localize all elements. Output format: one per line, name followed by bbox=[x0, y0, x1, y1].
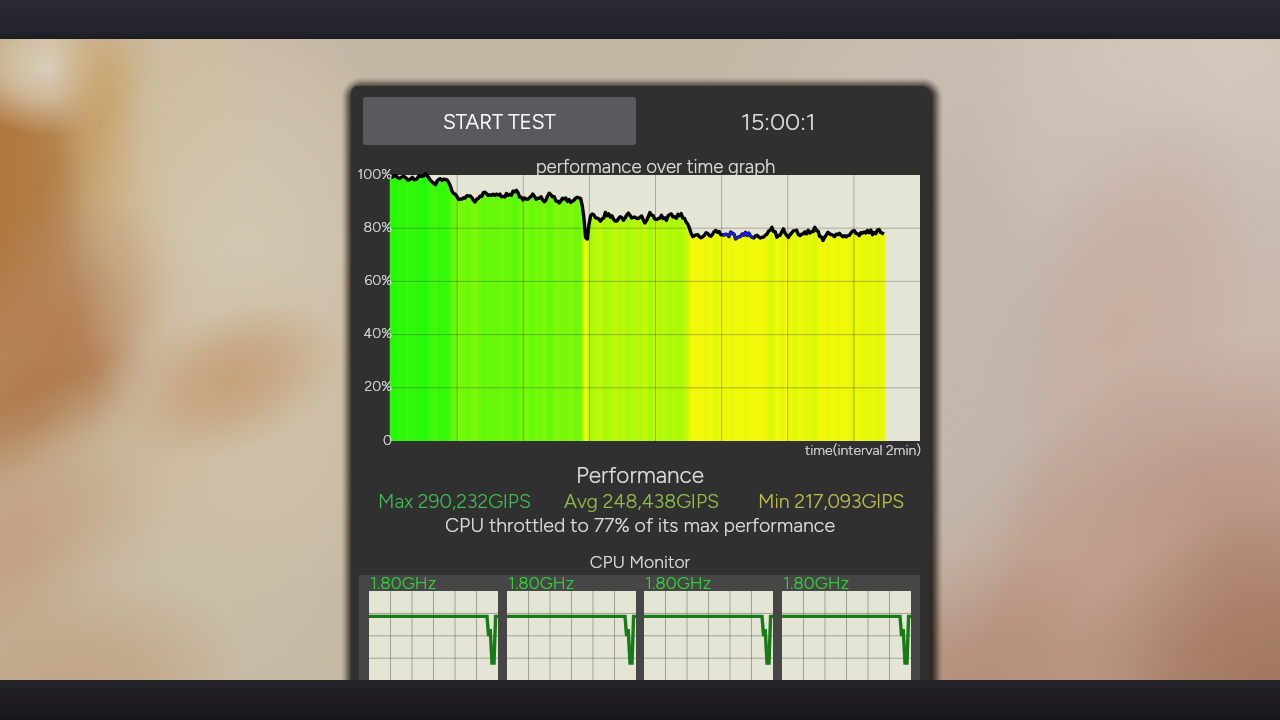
staticText: Performance bbox=[351, 462, 929, 489]
staticText: 100% bbox=[356, 166, 392, 183]
staticText: Avg 248,438GIPS bbox=[564, 489, 720, 512]
staticText: 1.80GHz bbox=[370, 573, 437, 594]
staticText: 60% bbox=[356, 272, 392, 289]
staticText: time(interval 2min) bbox=[805, 442, 922, 459]
staticText: performance over time graph bbox=[391, 155, 920, 177]
staticText: Max 290,232GIPS bbox=[378, 489, 531, 512]
staticText: 0 bbox=[356, 432, 392, 449]
button[interactable]: 15:00:1 bbox=[636, 97, 921, 145]
button[interactable]: START TEST bbox=[363, 97, 636, 145]
staticText: 1.80GHz bbox=[508, 573, 575, 594]
staticText: CPU Monitor bbox=[351, 551, 929, 572]
staticText: 40% bbox=[356, 325, 392, 342]
staticText: START TEST bbox=[443, 109, 556, 134]
staticText: 15:00:1 bbox=[741, 107, 816, 136]
staticText: CPU throttled to 77% of its max performa… bbox=[351, 513, 929, 537]
staticText: Min 217,093GIPS bbox=[758, 489, 905, 512]
staticText: 1.80GHz bbox=[783, 573, 850, 594]
staticText: 80% bbox=[356, 219, 392, 236]
staticText: 20% bbox=[356, 378, 392, 395]
staticText: 1.80GHz bbox=[645, 573, 712, 594]
